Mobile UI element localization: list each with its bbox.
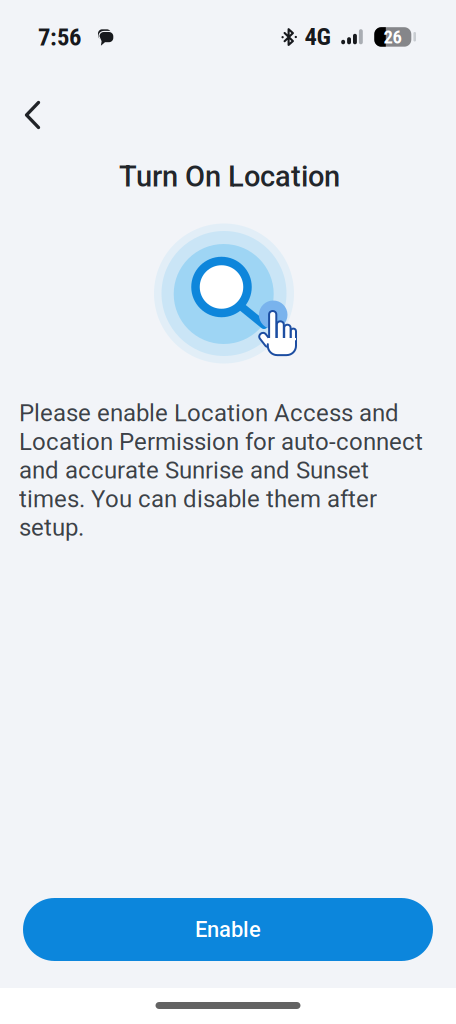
staticText: Enable	[195, 917, 261, 942]
button[interactable]: Enable	[23, 898, 433, 961]
staticText: setup.	[19, 513, 84, 542]
staticText: Turn On Location	[119, 159, 340, 194]
staticText: Location Permission for auto-connect	[19, 428, 423, 456]
staticText: 7:56	[38, 22, 81, 51]
staticText: 4G	[304, 22, 330, 51]
staticText: 26	[383, 26, 401, 48]
staticText: times. You can disable them after	[19, 485, 377, 513]
staticText: Please enable Location Access and	[19, 399, 399, 427]
staticText: and accurate Sunrise and Sunset	[19, 456, 369, 484]
button[interactable]	[10, 93, 54, 137]
